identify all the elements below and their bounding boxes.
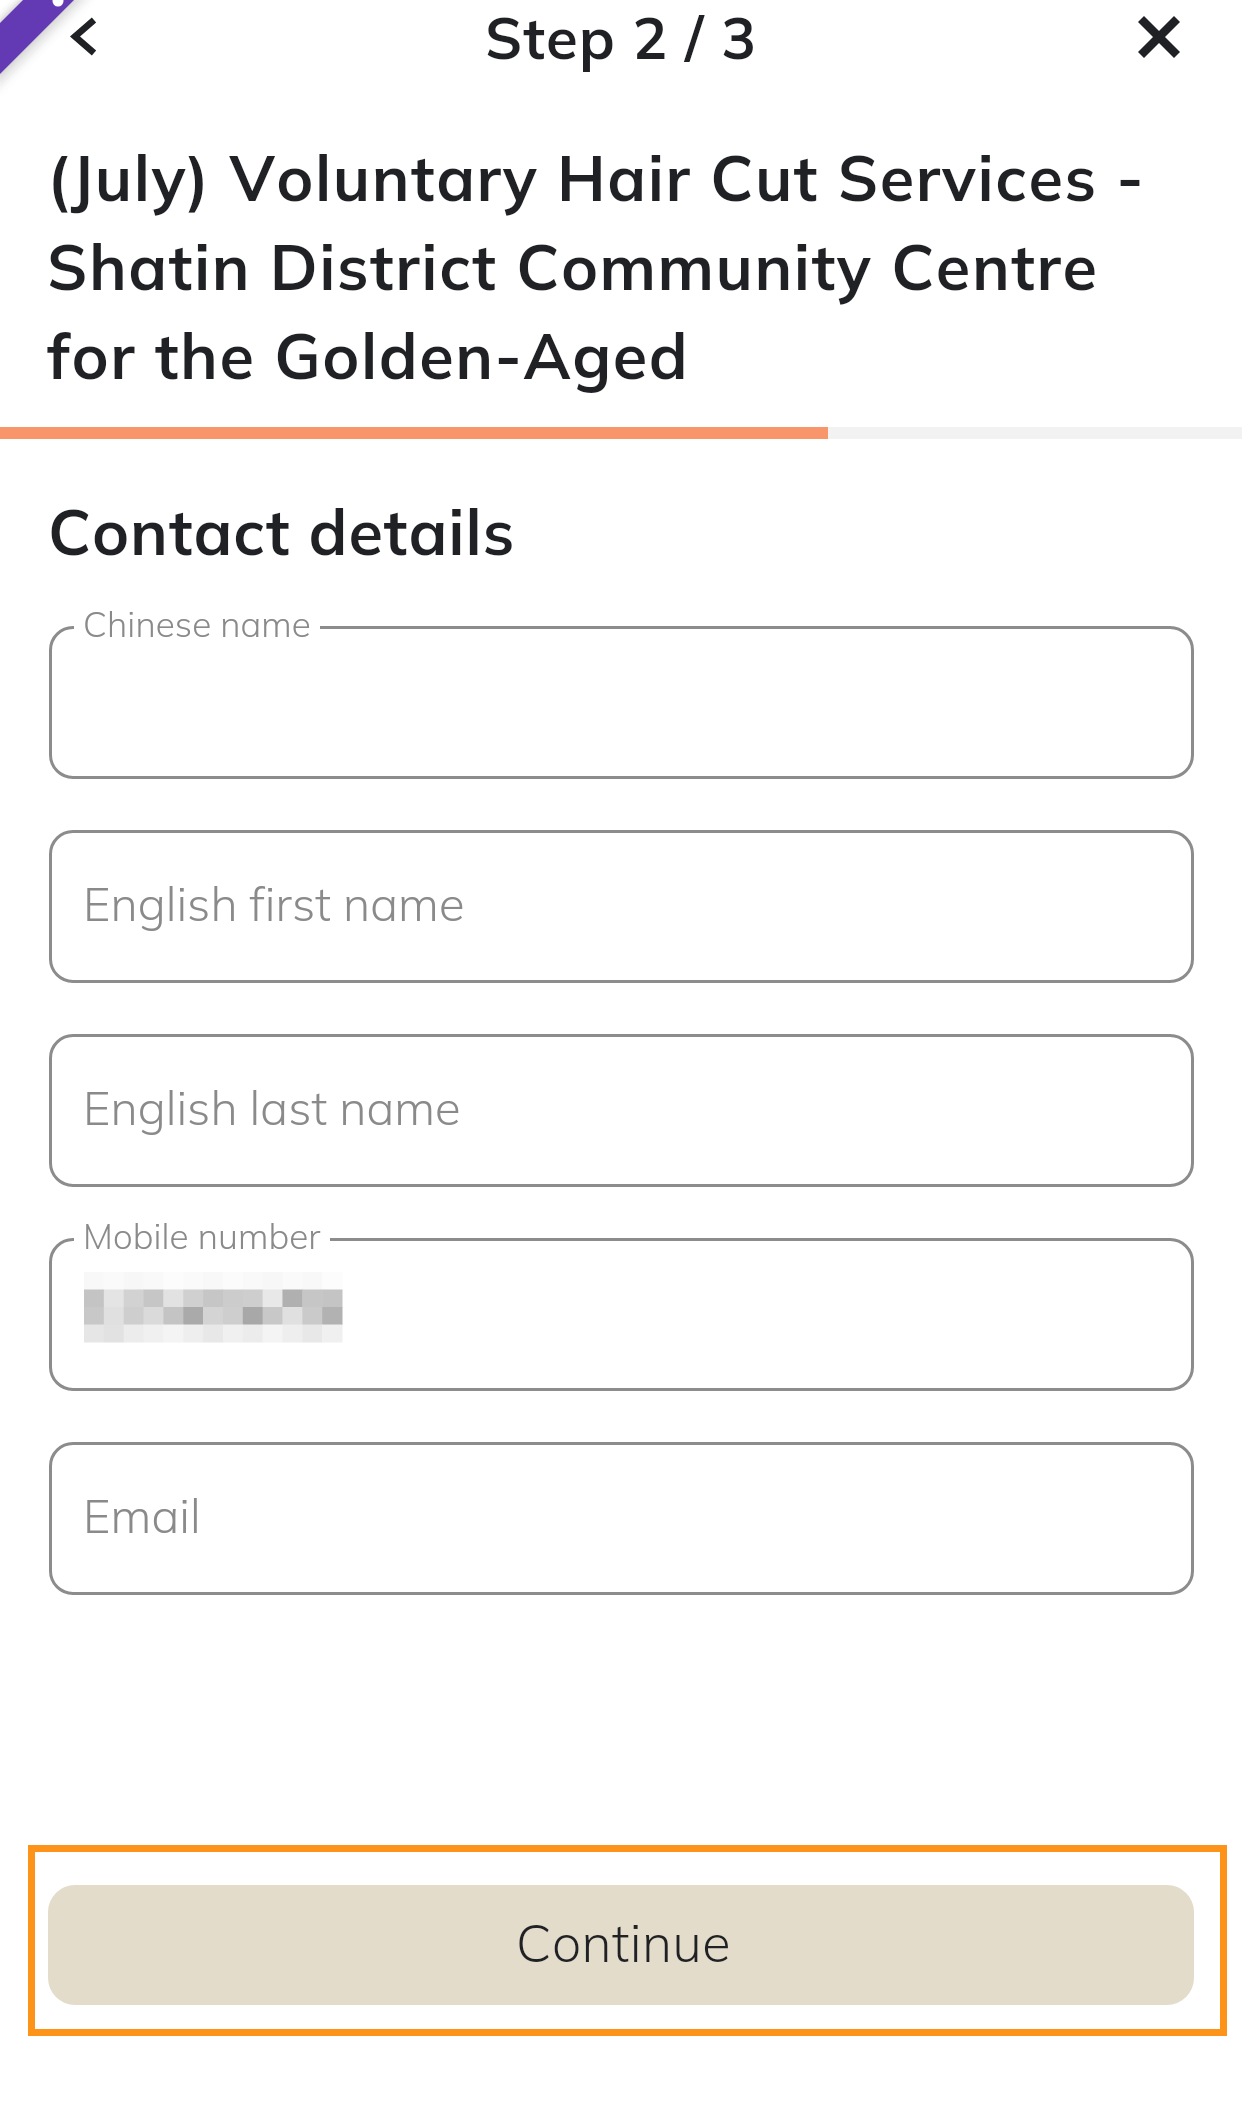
- button[interactable]: [49, 1238, 1194, 1391]
- button[interactable]: Continue: [28, 1845, 1227, 2036]
- staticText: Step 2 / 3: [0, 1, 1242, 74]
- staticText: English first name: [83, 874, 465, 933]
- staticText: Email: [83, 1486, 201, 1545]
- button[interactable]: Close: [1122, 0, 1194, 73]
- button[interactable]: Back: [50, 0, 126, 73]
- staticText: (July) Voluntary Hair Cut Services - Sha…: [47, 138, 1172, 395]
- button[interactable]: [49, 1442, 1194, 1595]
- button[interactable]: [49, 626, 1194, 779]
- button[interactable]: [49, 1034, 1194, 1187]
- staticText: Contact details: [48, 492, 516, 571]
- staticText: Continue: [516, 1910, 731, 1975]
- staticText: Mobile number: [83, 1214, 321, 1258]
- button[interactable]: [49, 830, 1194, 983]
- staticText: English last name: [83, 1078, 461, 1137]
- staticText: Chinese name: [83, 602, 311, 646]
